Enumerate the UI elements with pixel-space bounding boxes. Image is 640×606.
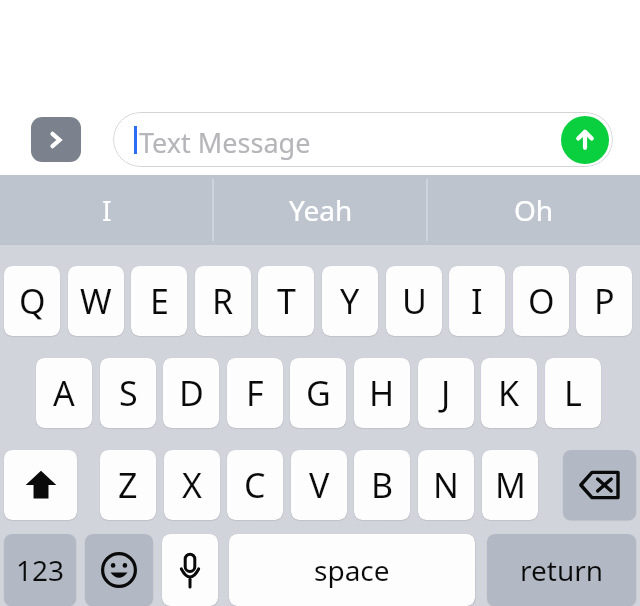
staticText: O [528,278,555,324]
button[interactable]: L [545,358,601,428]
button[interactable]: S [100,358,156,428]
button[interactable]: N [418,450,474,520]
button[interactable]: C [227,450,283,520]
staticText: X [182,462,202,508]
staticText: U [402,278,427,324]
staticText: S [119,370,138,416]
button[interactable]: I [0,175,214,245]
staticText: H [369,370,395,416]
button[interactable]: Oh [427,175,640,245]
button[interactable]: D [163,358,219,428]
button[interactable]: Emoji [85,534,153,606]
staticText: E [150,278,169,324]
staticText: V [309,462,330,508]
button[interactable]: W [68,266,124,336]
button[interactable]: T [258,266,314,336]
staticText: R [212,278,234,324]
button[interactable]: V [291,450,347,520]
button[interactable]: I [449,266,505,336]
staticText: return [520,551,604,589]
button[interactable]: Q [4,266,60,336]
staticText: Yeah [289,191,353,229]
staticText: J [441,370,451,416]
staticText: M [495,462,526,508]
staticText: Text Message [139,124,311,161]
button[interactable]: P [576,266,632,336]
button[interactable]: G [290,358,346,428]
button[interactable]: U [386,266,442,336]
button[interactable]: H [354,358,410,428]
staticText: 123 [16,551,65,589]
staticText: Z [118,462,138,508]
button[interactable]: K [481,358,537,428]
button[interactable]: R [195,266,251,336]
staticText: Oh [514,191,554,229]
button[interactable]: F [227,358,283,428]
staticText: W [80,278,112,324]
staticText: N [433,462,459,508]
button[interactable]: M [482,450,538,520]
button[interactable]: A [36,358,92,428]
button[interactable]: space [229,534,475,606]
staticText: G [306,370,331,416]
staticText: Q [19,278,46,324]
staticText: L [564,370,582,416]
button[interactable]: Send [561,116,609,164]
staticText: F [246,370,264,416]
button[interactable]: Text Message [113,112,613,167]
button[interactable]: Z [100,450,156,520]
staticText: space [314,551,390,589]
button[interactable]: J [418,358,474,428]
staticText: P [594,278,615,324]
button[interactable]: return [487,534,636,606]
button[interactable]: Shift [4,450,77,520]
button[interactable]: Backspace [563,450,636,520]
staticText: B [371,462,394,508]
button[interactable]: Expand apps [31,117,81,162]
button[interactable]: Yeah [214,175,427,245]
button[interactable]: O [513,266,569,336]
button[interactable]: X [164,450,220,520]
staticText: K [498,370,520,416]
staticText: Y [340,278,360,324]
button[interactable]: Y [322,266,378,336]
staticText: T [277,278,296,324]
button[interactable]: 123 [4,534,76,606]
staticText: A [53,370,75,416]
button[interactable]: E [131,266,187,336]
staticText: I [471,278,483,324]
staticText: I [102,191,112,229]
button[interactable]: B [354,450,410,520]
staticText: D [179,370,204,416]
staticText: C [244,462,266,508]
button[interactable]: Dictate [162,534,218,606]
